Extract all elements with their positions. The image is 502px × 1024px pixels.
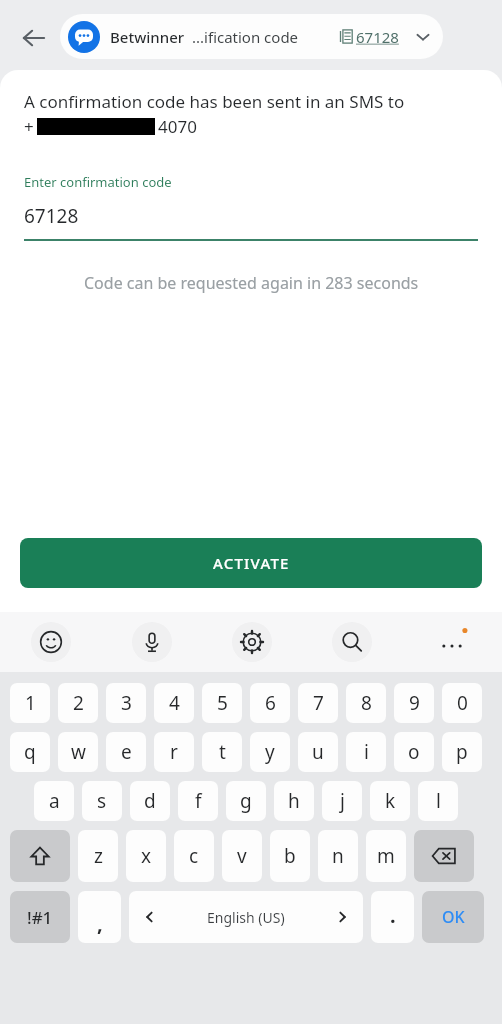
button[interactable]: h (274, 781, 314, 821)
button[interactable]: z (78, 830, 118, 882)
staticText: 8 (361, 690, 372, 716)
button[interactable]: 7 (298, 683, 338, 723)
button[interactable]: v (222, 830, 262, 882)
button[interactable]: a (34, 781, 74, 821)
staticText: v (237, 843, 247, 869)
staticText: A confirmation code has been sent in an … (24, 90, 405, 113)
button[interactable]: u (298, 732, 338, 772)
button[interactable]: g (226, 781, 266, 821)
staticText: , (97, 910, 103, 937)
button[interactable]: b (270, 830, 310, 882)
staticText: 0 (457, 690, 468, 716)
staticText: + (24, 115, 34, 138)
button[interactable]: x (126, 830, 166, 882)
staticText: u (312, 739, 324, 765)
staticText: !#1 (27, 906, 53, 929)
button[interactable]: f (178, 781, 218, 821)
button[interactable]: l (418, 781, 458, 821)
button[interactable]: j (322, 781, 362, 821)
staticText: 5 (217, 690, 228, 716)
staticText: g (240, 788, 252, 814)
staticText: 2 (73, 690, 84, 716)
button[interactable]: Backspace (414, 830, 474, 882)
staticText: o (408, 739, 420, 765)
button[interactable]: Settings (202, 612, 302, 672)
staticText: q (24, 739, 36, 765)
staticText: ...ification code (192, 27, 299, 47)
button[interactable]: , (78, 891, 121, 943)
button[interactable]: Emoji (0, 612, 101, 672)
button[interactable]: 8 (346, 683, 386, 723)
button[interactable]: !#1 (10, 891, 70, 943)
button[interactable]: Search (302, 612, 402, 672)
staticText: y (265, 739, 275, 765)
staticText: Betwinner (110, 27, 185, 47)
button[interactable]: 9 (394, 683, 434, 723)
button[interactable]: Shift (10, 830, 70, 882)
staticText: 4 (169, 690, 180, 716)
button[interactable]: w (58, 732, 98, 772)
button[interactable]: t (202, 732, 242, 772)
button[interactable]: English (US) (129, 891, 363, 943)
staticText: 1 (25, 690, 36, 716)
staticText: h (288, 788, 300, 814)
button[interactable]: 5 (202, 683, 242, 723)
button[interactable]: Expand (411, 25, 435, 49)
button[interactable]: Betwinner (60, 14, 443, 59)
staticText: f (195, 788, 202, 814)
staticText: d (144, 788, 156, 814)
staticText: Code can be requested again in 283 secon… (84, 272, 419, 294)
button[interactable]: r (154, 732, 194, 772)
other: Shift (28, 844, 52, 868)
staticText: n (332, 843, 344, 869)
button[interactable]: s (82, 781, 122, 821)
button[interactable]: y (250, 732, 290, 772)
staticText: l (436, 788, 441, 814)
staticText: ACTIVATE (213, 553, 290, 573)
button[interactable]: 4 (154, 683, 194, 723)
button[interactable]: q (10, 732, 50, 772)
staticText: i (364, 739, 369, 765)
staticText: c (189, 843, 199, 869)
staticText: p (456, 739, 468, 765)
button[interactable]: 3 (106, 683, 146, 723)
button[interactable]: 2 (58, 683, 98, 723)
button[interactable]: 1 (10, 683, 50, 723)
staticText: Enter confirmation code (24, 173, 172, 191)
staticText: a (49, 788, 60, 814)
button[interactable]: ACTIVATE (20, 538, 482, 588)
staticText: x (141, 843, 152, 869)
staticText: r (170, 739, 178, 765)
staticText: 67128 (356, 27, 399, 47)
button[interactable]: 0 (442, 683, 482, 723)
button[interactable]: . (371, 891, 414, 943)
button[interactable]: d (130, 781, 170, 821)
staticText: w (71, 739, 86, 765)
staticText: t (219, 739, 226, 765)
button[interactable]: Voice input (101, 612, 202, 672)
button[interactable]: i (346, 732, 386, 772)
button[interactable]: 6 (250, 683, 290, 723)
button[interactable]: m (366, 830, 406, 882)
staticText: 67128 (24, 203, 79, 229)
staticText: e (121, 739, 132, 765)
staticText: 9 (409, 690, 420, 716)
staticText: 7 (313, 690, 324, 716)
button[interactable]: e (106, 732, 146, 772)
staticText: z (94, 843, 103, 869)
staticText: s (97, 788, 107, 814)
button[interactable]: OK (422, 891, 484, 943)
button[interactable]: Back (12, 16, 56, 60)
button[interactable]: k (370, 781, 410, 821)
staticText: 4070 (158, 115, 197, 138)
button[interactable]: p (442, 732, 482, 772)
button[interactable]: n (318, 830, 358, 882)
staticText: 3 (121, 690, 132, 716)
button[interactable]: o (394, 732, 434, 772)
staticText: . (390, 902, 396, 929)
staticText: 6 (265, 690, 276, 716)
staticText: k (385, 788, 396, 814)
button[interactable]: c (174, 830, 214, 882)
staticText: m (377, 843, 395, 869)
button[interactable]: More options (402, 612, 502, 672)
